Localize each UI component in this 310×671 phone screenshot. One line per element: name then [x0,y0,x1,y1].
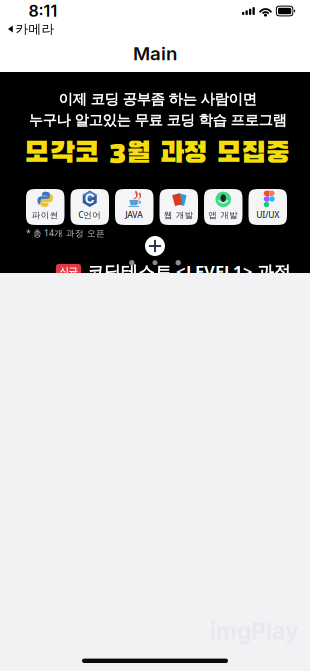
staticText: C언어 [78,209,101,220]
button[interactable]: Main [0,35,310,72]
staticText: 앱 개발 [208,210,238,220]
button[interactable]: 웹 개발 [159,189,198,225]
staticText: 이제 코딩 공부좀 하는 사람이면 [59,90,257,108]
staticText: 신규 [59,265,77,277]
staticText: 8:11 [28,1,57,21]
staticText: imgPlay [210,617,298,645]
staticText: 웹 개발 [164,210,194,220]
staticText: 파이썬 [32,210,59,220]
button[interactable]: UI/UX [248,189,287,225]
button[interactable]: 파이썬 [26,189,64,225]
button[interactable]: JAVA [115,189,153,225]
button[interactable]: 앱 개발 [204,189,242,225]
staticText: C [85,191,95,207]
staticText: * 총 14개 과정 오픈 [26,227,105,239]
staticText: UI/UX [256,209,279,220]
staticText: 카메라 [15,21,54,37]
staticText: JAVA [125,209,143,220]
staticText: Main [133,42,177,65]
staticText: 코딩테스트 <LEVEL1> 과정 [87,260,291,283]
staticText: 누구나 알고있는 무료 코딩 학습 프로그램 [29,111,287,129]
staticText: 모각코 3월 과정 모집중 [25,140,291,169]
button[interactable]: C [70,189,109,225]
button[interactable]: Add [145,236,165,256]
